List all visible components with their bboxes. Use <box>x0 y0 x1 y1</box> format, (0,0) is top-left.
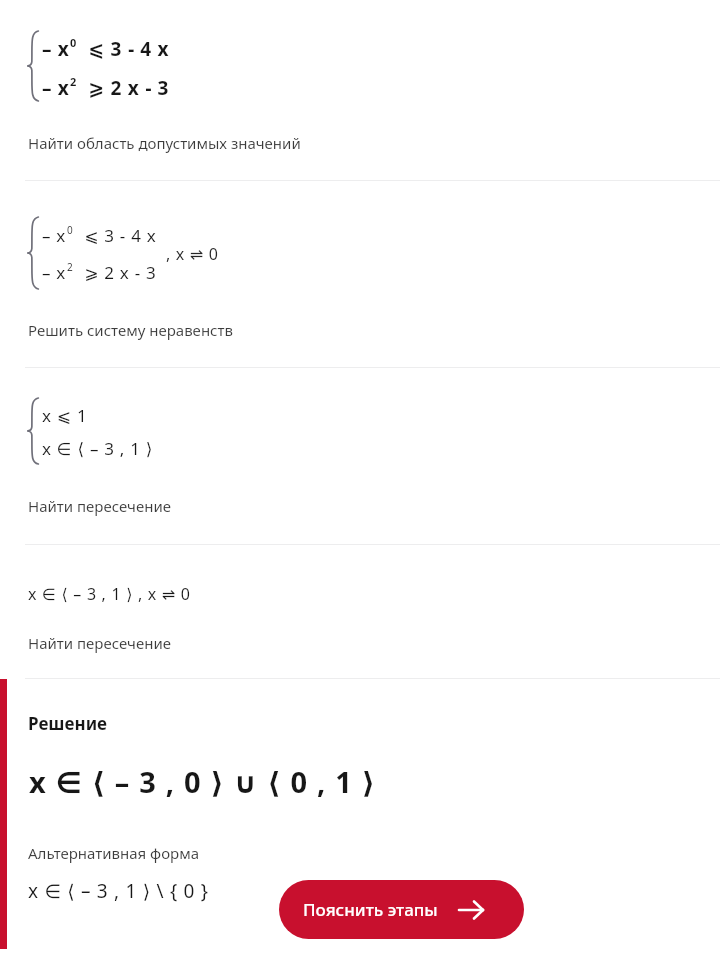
staticText: – x <box>42 36 70 62</box>
staticText: 2 <box>70 74 77 89</box>
staticText: 0 <box>70 35 77 50</box>
staticText: Найти пересечение <box>28 496 171 516</box>
staticText: x ∈ ⟨ – 3 , 1 ⟩ \ { 0 } <box>28 878 209 904</box>
staticText: – x <box>42 75 70 101</box>
staticText: , x ⇌ 0 <box>166 243 219 265</box>
other: Далее <box>458 897 484 923</box>
staticText: Решение <box>28 712 108 735</box>
staticText: Найти пересечение <box>28 633 171 653</box>
staticText: x ∈ ⟨ – 3 , 0 ⟩ ∪ ⟨ 0 , 1 ⟩ <box>29 762 377 801</box>
staticText: ⩽ 3 ⁃ 4 x <box>74 224 157 247</box>
staticText: Пояснить этапы <box>303 898 438 921</box>
staticText: x ⩽ 1 <box>42 404 88 427</box>
staticText: 2 <box>67 260 74 274</box>
staticText: – x <box>42 224 67 247</box>
staticText: – x <box>42 261 67 284</box>
staticText: x ∈ ⟨ – 3 , 1 ⟩ <box>42 437 154 460</box>
button[interactable]: Пояснить этапы <box>279 880 524 939</box>
staticText: ⩾ 2 x ⁃ 3 <box>77 75 170 101</box>
staticText: Альтернативная форма <box>28 843 200 863</box>
staticText: Решить систему неравенств <box>28 320 233 340</box>
staticText: Найти область допустимых значений <box>28 133 301 153</box>
staticText: ⩽ 3 ⁃ 4 x <box>77 36 170 62</box>
staticText: 0 <box>67 223 74 237</box>
staticText: ⩾ 2 x ⁃ 3 <box>74 261 157 284</box>
staticText: x ∈ ⟨ – 3 , 1 ⟩ , x ⇌ 0 <box>28 583 191 605</box>
